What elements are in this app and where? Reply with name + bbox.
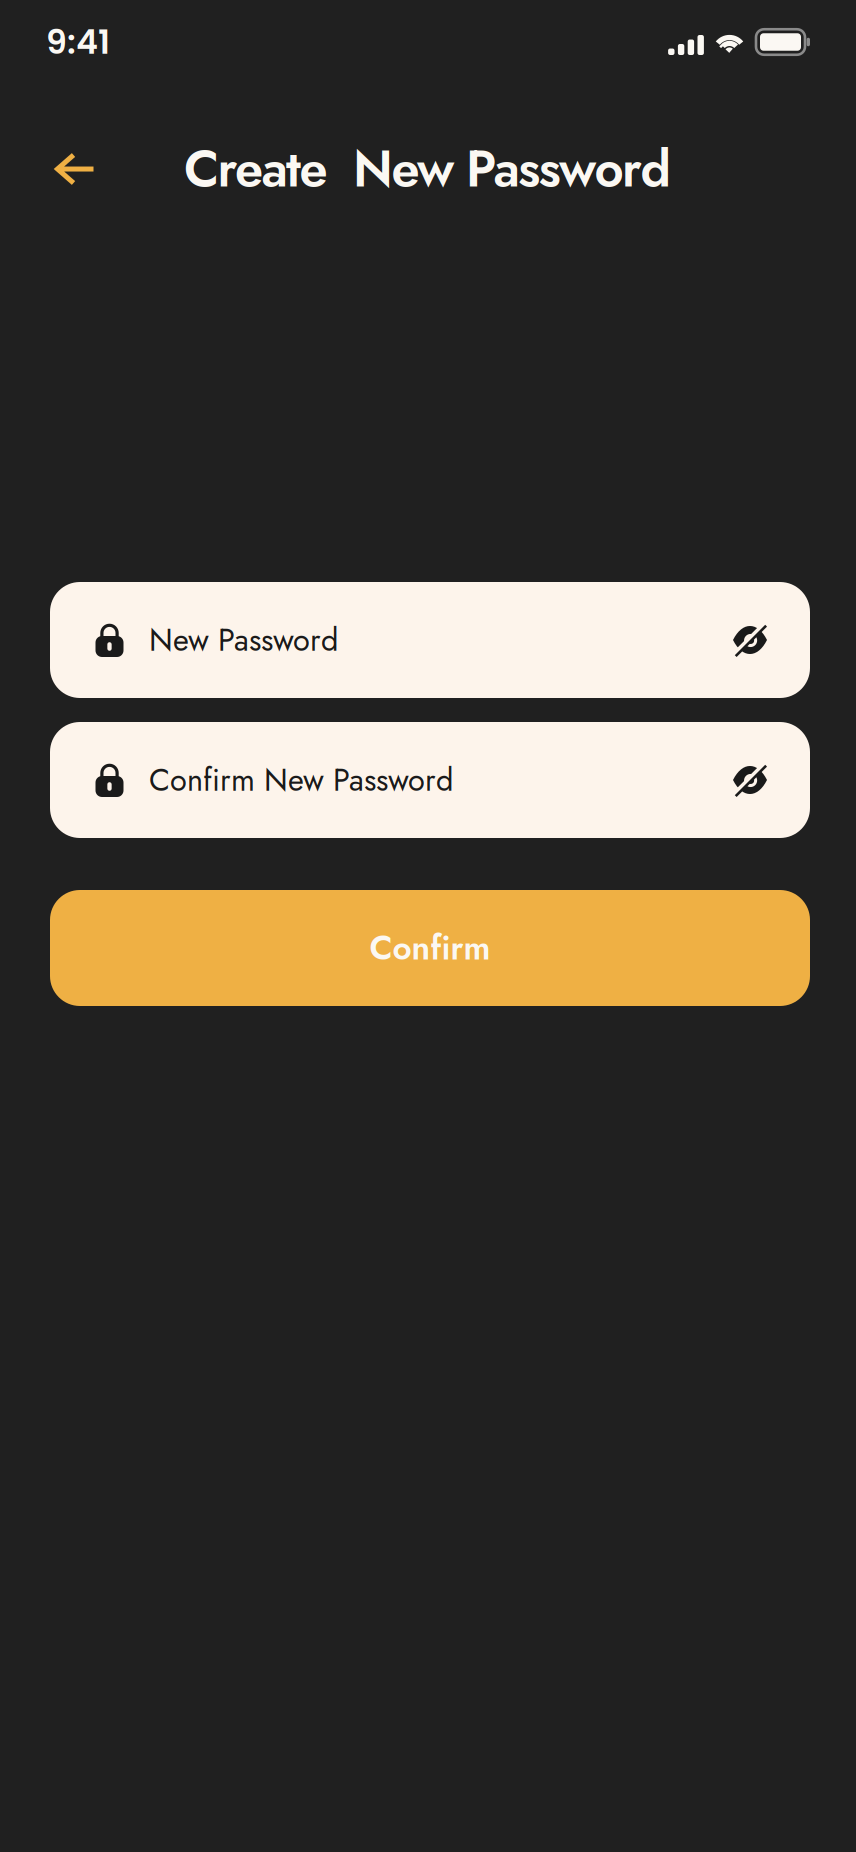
staticText: New Password [149,618,338,662]
staticText: Confirm [369,924,490,972]
staticText: Create New Password [184,132,671,206]
button[interactable]: Confirm [50,890,810,1006]
button[interactable]: Back [41,138,109,200]
staticText: Confirm New Password [149,758,453,802]
button[interactable]: Confirm New Password [50,722,810,838]
button[interactable]: New Password [50,582,810,698]
staticText: 9:41 [46,19,110,65]
